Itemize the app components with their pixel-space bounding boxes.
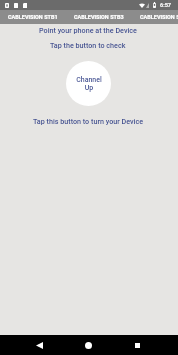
button[interactable]: Home [76,335,100,355]
staticText: CABLEVISION STB1 [8,14,58,20]
button[interactable]: Channel Up [66,61,111,106]
staticText: Tap this button to turn your Device [33,117,144,125]
staticText: Tap the button to check [50,41,126,49]
button[interactable]: Recent apps [125,335,149,355]
button[interactable]: CABLEVISION STB1 [0,10,66,24]
button[interactable]: CABLEVISION STB3 [66,10,132,24]
staticText: Channel Up [76,76,102,92]
button[interactable]: Back [27,335,51,355]
staticText: CABLEVISION STB2 [140,14,178,20]
staticText: CABLEVISION STB3 [74,14,124,20]
button[interactable]: CABLEVISION STB2 [132,10,178,24]
staticText: 6:57 [160,2,172,9]
staticText: Point your phone at the Device [39,26,137,34]
